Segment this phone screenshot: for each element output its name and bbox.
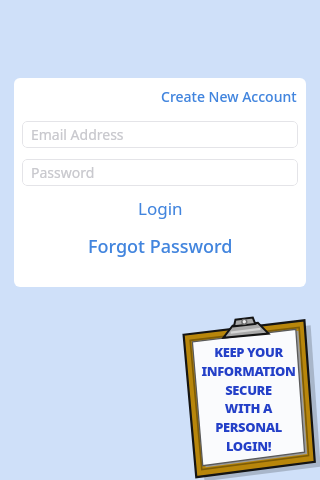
staticText: WITH A: [198, 399, 299, 417]
staticText: PERSONAL: [198, 418, 299, 436]
staticText: Password: [31, 163, 95, 182]
staticText: Login: [138, 197, 183, 220]
button[interactable]: Email Address: [22, 121, 298, 148]
staticText: INFORMATION: [198, 362, 299, 380]
button[interactable]: Password: [22, 159, 298, 186]
staticText: LOGIN!: [198, 437, 299, 455]
staticText: Forgot Password: [88, 234, 233, 259]
button[interactable]: Login: [14, 193, 306, 224]
button[interactable]: Forgot Password: [14, 230, 306, 263]
staticText: KEEP YOUR: [198, 343, 299, 361]
staticText: SECURE: [198, 381, 299, 399]
staticText: Create New Account: [161, 87, 297, 106]
other: Keep your information secure with a pers…: [183, 317, 315, 480]
staticText: Email Address: [31, 125, 124, 144]
button[interactable]: Create New Account: [149, 78, 306, 111]
